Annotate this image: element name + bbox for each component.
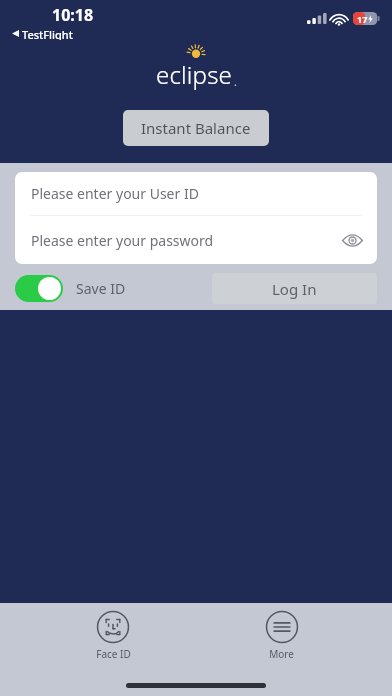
staticText: Instant Balance [141,118,251,138]
staticText: Face ID [96,647,131,661]
staticText: Please enter your User ID [31,184,199,203]
staticText: Log In [272,279,317,299]
button[interactable]: Log In [212,273,377,304]
button[interactable]: Show password [339,227,365,253]
button[interactable]: Please enter your password [15,216,377,264]
button[interactable]: Face ID [30,610,196,661]
staticText: TestFlight [22,27,73,40]
button[interactable]: Please enter your User ID [15,172,377,215]
staticText: Please enter your password [31,231,214,250]
staticText: eclipse [156,58,233,91]
staticText: More [269,647,294,661]
staticText: 10:18 [52,4,94,26]
button[interactable]: More [196,610,367,661]
staticText: 17 [357,13,368,25]
button[interactable]: Save ID toggle [15,275,63,302]
button[interactable]: Instant Balance [123,110,269,146]
staticText: Save ID [76,279,126,298]
staticText: . [234,74,237,89]
